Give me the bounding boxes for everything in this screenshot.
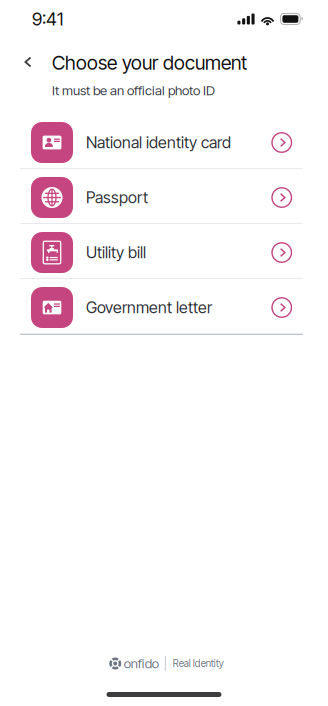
staticText: National identity card — [86, 133, 231, 152]
staticText: Passport — [86, 188, 148, 207]
button[interactable]: Back — [13, 47, 43, 77]
staticText: Utility bill — [86, 243, 146, 262]
staticText: onfido — [124, 655, 159, 671]
staticText: Government letter — [86, 298, 212, 317]
button[interactable]: Utility bill — [0, 224, 328, 279]
button[interactable]: Passport — [0, 169, 328, 224]
staticText: 9:41 — [32, 8, 63, 30]
staticText: Real Identity — [173, 657, 224, 669]
staticText: It must be an official photo ID — [52, 82, 215, 98]
staticText: Choose your document — [52, 51, 247, 74]
button[interactable]: Government letter — [0, 279, 328, 334]
button[interactable]: National identity card — [0, 114, 328, 169]
